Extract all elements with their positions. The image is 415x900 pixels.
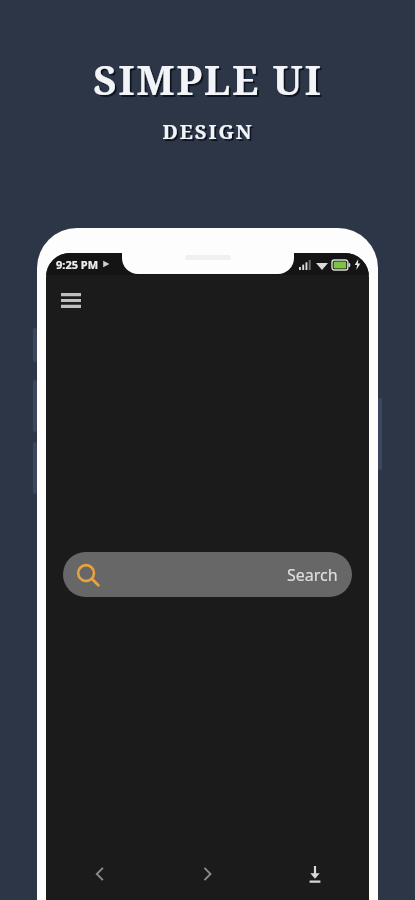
staticText: Search <box>287 564 338 586</box>
staticText: 9:25 PM <box>56 257 99 272</box>
staticText: SIMPLE UI <box>95 54 325 108</box>
button[interactable]: Menu <box>54 283 88 317</box>
staticText: SIMPLE UI <box>93 52 323 106</box>
button[interactable]: Forward <box>153 853 261 895</box>
staticText: DESIGN <box>162 118 254 145</box>
button[interactable]: Search <box>63 552 352 597</box>
button[interactable]: Download <box>261 853 369 895</box>
staticText: DESIGN <box>164 120 256 147</box>
button[interactable]: Back <box>46 853 153 895</box>
